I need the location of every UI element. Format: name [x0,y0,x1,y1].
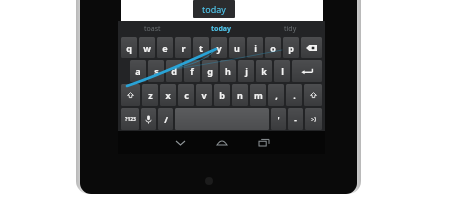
staticText: t [199,42,203,54]
button[interactable]: :-) [305,108,322,130]
button[interactable]: Shift [304,84,322,106]
staticText: p [288,42,294,54]
staticText: m [254,89,263,101]
button[interactable]: c [178,84,194,106]
button[interactable]: a [130,60,146,82]
button[interactable]: Voice input [141,108,156,130]
button[interactable]: Hide keyboard [159,131,201,154]
staticText: u [234,42,240,54]
staticText: s [154,65,159,77]
staticText: . [293,89,296,101]
button[interactable]: s [148,60,164,82]
button[interactable]: Space [175,108,269,130]
button[interactable]: o [265,37,281,58]
staticText: n [237,89,243,101]
button[interactable]: u [229,37,245,58]
staticText: z [148,89,153,101]
button[interactable]: ' [271,108,286,130]
staticText: l [281,65,284,77]
button[interactable]: w [139,37,155,58]
staticText: tidy [284,24,297,34]
staticText: b [219,89,225,101]
button[interactable]: j [238,60,254,82]
button[interactable]: v [196,84,212,106]
button[interactable]: f [184,60,200,82]
button[interactable]: , [268,84,284,106]
staticText: g [207,65,213,77]
staticText: x [165,89,171,101]
button[interactable]: t [193,37,209,58]
button[interactable]: e [157,37,173,58]
staticText: f [190,65,194,77]
staticText: - [294,114,297,125]
staticText: k [261,65,267,77]
button[interactable]: m [250,84,266,106]
button[interactable]: tidy [256,21,325,36]
button[interactable]: x [160,84,176,106]
button[interactable]: today [187,21,256,36]
staticText: / [164,113,168,125]
staticText: d [171,65,177,77]
button[interactable]: Recent apps [243,131,285,154]
button[interactable]: n [232,84,248,106]
staticText: i [254,42,257,54]
button[interactable]: Home [201,131,243,154]
staticText: h [225,65,231,77]
button[interactable]: d [166,60,182,82]
staticText: :-) [311,116,316,123]
staticText: q [126,42,132,54]
button[interactable]: / [158,108,173,130]
staticText: , [275,89,278,101]
staticText: today [202,3,226,15]
staticText: ?123 [125,116,136,123]
staticText: ' [277,114,280,125]
button[interactable]: . [286,84,302,106]
staticText: e [162,42,168,54]
staticText: y [216,42,222,54]
button[interactable]: i [247,37,263,58]
staticText: j [245,65,248,77]
button[interactable]: - [288,108,303,130]
staticText: r [181,42,186,54]
button[interactable]: ?123 [121,108,139,130]
button[interactable]: Enter [292,60,322,82]
staticText: c [184,89,189,101]
staticText: today [211,24,232,34]
staticText: w [143,42,151,54]
button[interactable]: Backspace [301,37,322,58]
button[interactable]: b [214,84,230,106]
button[interactable]: l [274,60,290,82]
button[interactable]: p [283,37,299,58]
button[interactable]: z [142,84,158,106]
button[interactable]: y [211,37,227,58]
button[interactable]: r [175,37,191,58]
staticText: a [135,65,141,77]
button[interactable]: h [220,60,236,82]
staticText: toast [144,24,161,34]
button[interactable]: Shift [121,84,140,106]
staticText: o [270,42,276,54]
button[interactable]: toast [118,21,187,36]
button[interactable]: q [121,37,137,58]
button[interactable]: k [256,60,272,82]
button[interactable]: g [202,60,218,82]
staticText: v [201,89,207,101]
